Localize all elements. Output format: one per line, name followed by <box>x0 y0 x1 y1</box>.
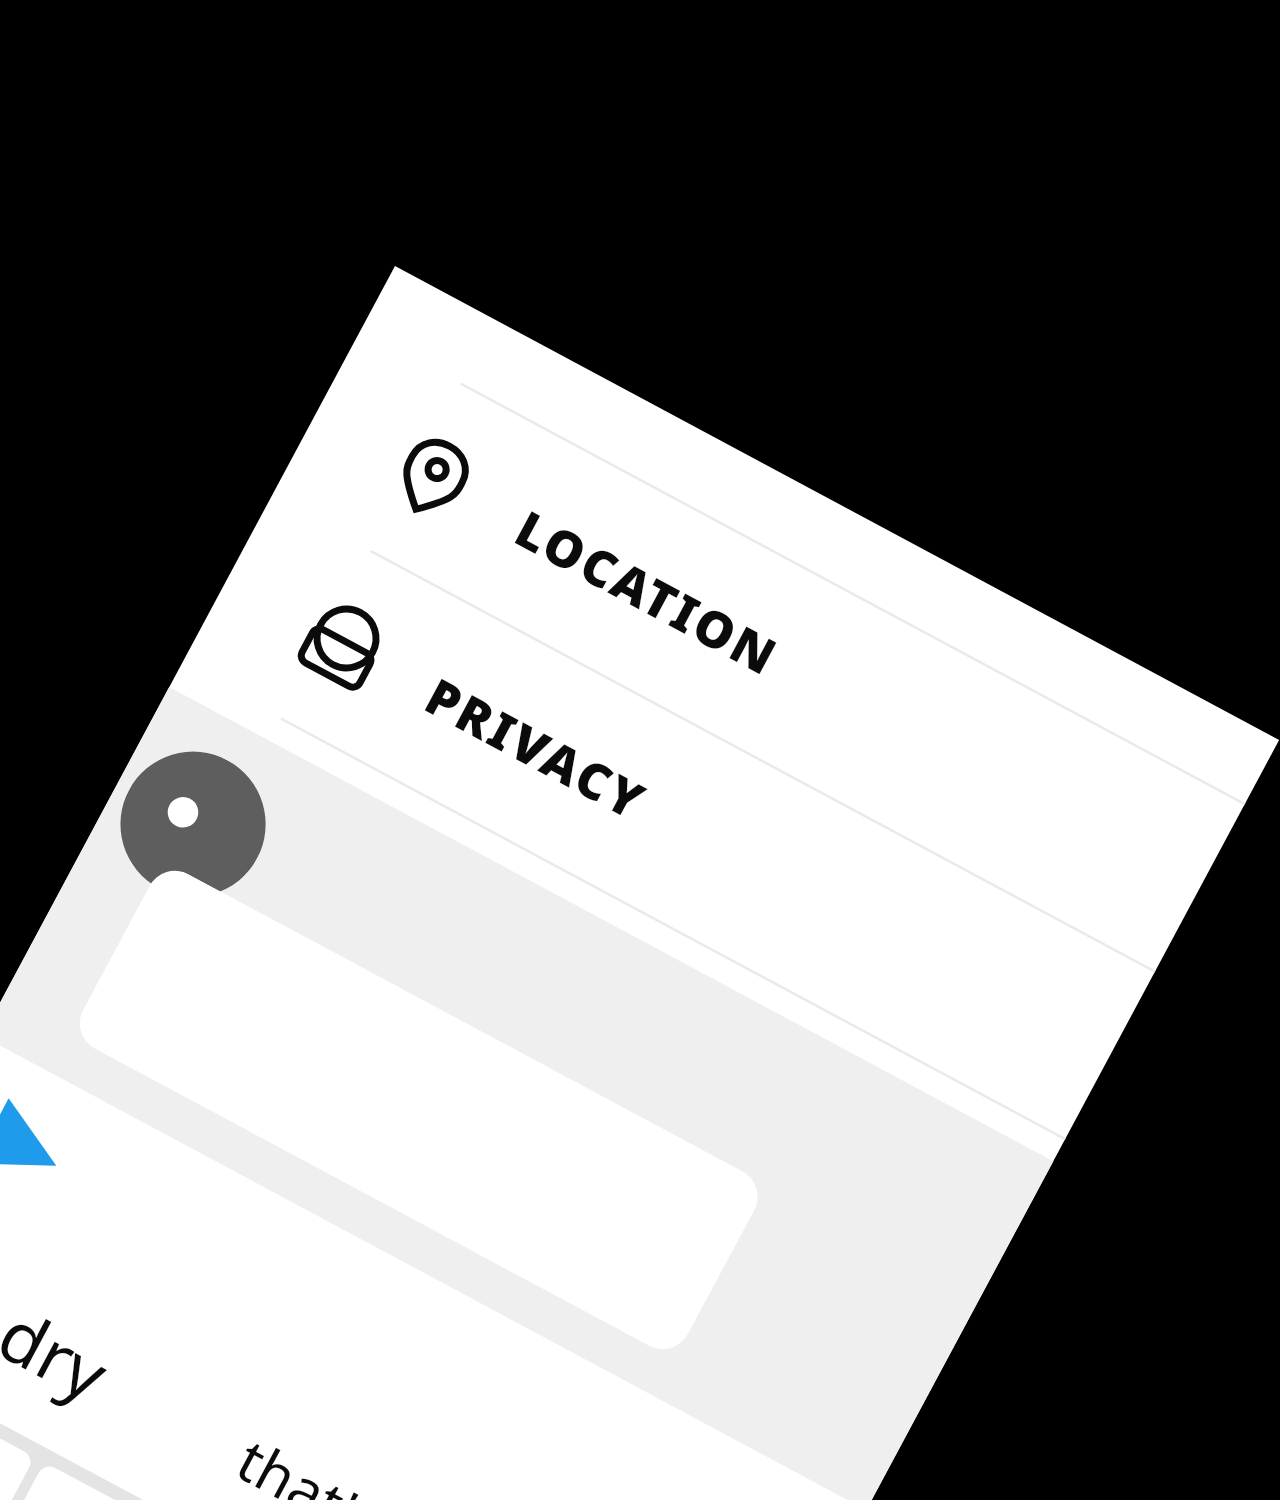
other: Location <box>378 421 489 532</box>
other: Send <box>0 1098 74 1198</box>
other: Privacy <box>288 589 399 700</box>
button[interactable]: 8 <box>0 1462 256 1500</box>
staticText: PRIVACY <box>414 661 660 835</box>
button[interactable]: 7 <box>0 1343 35 1500</box>
button[interactable]: Location <box>271 331 1244 970</box>
staticText: LOCATION <box>504 493 791 690</box>
staticText: that's it <box>224 1420 440 1500</box>
button[interactable]: Privacy <box>182 499 1154 1138</box>
staticText: dry <box>0 1284 126 1423</box>
